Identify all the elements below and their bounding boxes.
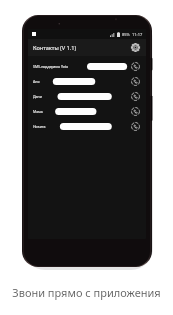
button[interactable]: Мама bbox=[28, 104, 146, 119]
button[interactable]: Call SMS-поддержка Yota bbox=[129, 60, 142, 73]
button[interactable]: Call Никита bbox=[129, 120, 142, 133]
button[interactable]: Аня bbox=[28, 74, 146, 89]
button[interactable]: SMS-поддержка Yota bbox=[28, 59, 146, 74]
button[interactable]: Call Мама bbox=[129, 105, 142, 118]
button[interactable]: Call Аня bbox=[129, 75, 142, 88]
staticText: Звони прямо с приложения bbox=[0, 285, 173, 300]
staticText: Никита bbox=[33, 124, 46, 129]
button[interactable]: Никита bbox=[28, 119, 146, 134]
staticText: Контакты (V 1.1) bbox=[33, 44, 77, 52]
staticText: Мама bbox=[33, 109, 43, 114]
button[interactable]: Дани bbox=[28, 89, 146, 104]
staticText: Аня bbox=[33, 79, 40, 84]
staticText: SMS-поддержка Yota bbox=[33, 64, 69, 69]
staticText: Дани bbox=[33, 94, 42, 99]
button[interactable]: Call Дани bbox=[129, 90, 142, 103]
staticText: 85% bbox=[122, 32, 130, 37]
button[interactable]: Settings bbox=[129, 41, 142, 54]
staticText: 11:17 bbox=[132, 32, 143, 37]
